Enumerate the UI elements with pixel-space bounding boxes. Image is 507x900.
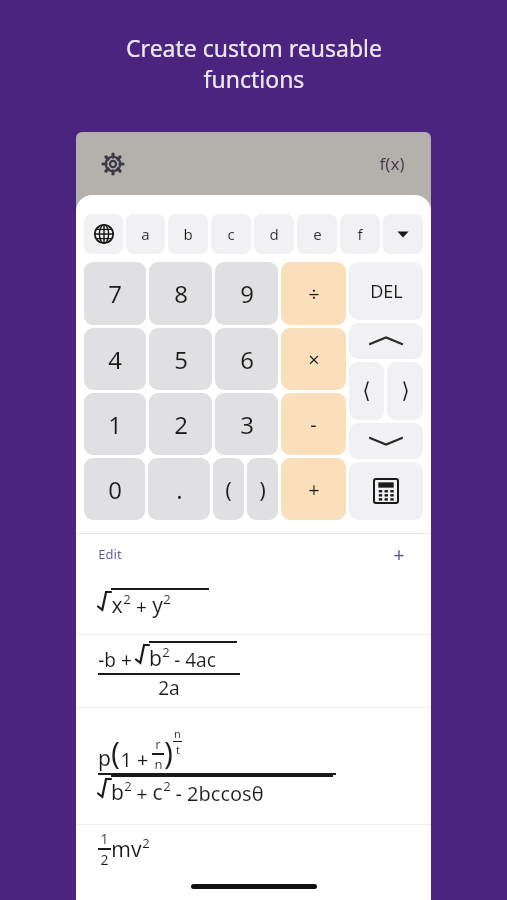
staticText: c xyxy=(227,224,235,244)
button[interactable]: + xyxy=(281,458,346,520)
staticText: DEL xyxy=(370,279,403,304)
staticText: + xyxy=(393,541,405,568)
button[interactable]: More xyxy=(383,214,423,254)
button[interactable]: . xyxy=(148,458,210,520)
button[interactable]: 6 xyxy=(215,328,278,390)
button[interactable]: 5 xyxy=(149,328,212,390)
button[interactable]: Right xyxy=(387,362,423,420)
staticText: ) xyxy=(164,732,173,773)
staticText: n xyxy=(154,755,163,773)
button[interactable]: c xyxy=(211,214,251,254)
staticText: × xyxy=(308,346,320,373)
button[interactable]: Left xyxy=(349,362,384,420)
staticText: b xyxy=(183,224,193,244)
staticText: 8 xyxy=(174,277,188,310)
staticText: - xyxy=(310,411,317,438)
staticText: e xyxy=(313,224,322,244)
staticText: 2a xyxy=(158,675,180,701)
button[interactable]: × xyxy=(281,328,346,390)
staticText: b xyxy=(149,644,162,673)
staticText: d xyxy=(269,224,279,244)
staticText: r xyxy=(155,735,161,753)
staticText: 2 xyxy=(100,850,109,869)
staticText: b xyxy=(111,778,124,807)
button[interactable]: a xyxy=(126,214,165,254)
staticText: t xyxy=(176,742,180,757)
button[interactable]: f(x) xyxy=(373,146,411,181)
staticText: c xyxy=(152,778,163,807)
staticText: f(x) xyxy=(379,152,405,175)
staticText: ( xyxy=(225,474,232,504)
staticText: + xyxy=(136,594,147,620)
button[interactable]: 8 xyxy=(149,262,212,325)
button[interactable]: Edit xyxy=(94,541,126,567)
staticText: ⟨ xyxy=(362,378,371,404)
staticText: + xyxy=(136,780,148,807)
staticText: f xyxy=(357,224,363,244)
staticText: mv xyxy=(111,835,142,864)
button[interactable]: 3 xyxy=(215,393,278,455)
staticText: 1 xyxy=(100,829,109,848)
staticText: 4 xyxy=(108,343,122,376)
staticText: - 4ac xyxy=(174,647,216,673)
button[interactable]: 2 xyxy=(149,393,212,455)
button[interactable]: Up xyxy=(349,323,423,359)
staticText: -b + xyxy=(98,647,132,673)
staticText: n xyxy=(174,726,181,741)
button[interactable]: Down xyxy=(349,423,423,459)
staticText: ( xyxy=(111,732,120,773)
button[interactable]: ( xyxy=(213,458,244,520)
button[interactable]: 0 xyxy=(84,458,145,520)
button[interactable]: ÷ xyxy=(281,262,346,325)
staticText: a xyxy=(141,224,150,244)
button[interactable]: 4 xyxy=(84,328,146,390)
staticText: 3 xyxy=(240,408,254,441)
staticText: 1 xyxy=(108,408,122,441)
button[interactable]: -b + xyxy=(76,635,431,707)
staticText: - 2bccosθ xyxy=(175,780,264,807)
button[interactable]: 9 xyxy=(215,262,278,325)
staticText: 1 + xyxy=(120,746,149,773)
staticText: p xyxy=(98,744,111,773)
button[interactable]: 1 xyxy=(76,825,431,900)
staticText: ) xyxy=(259,474,266,504)
staticText: Create custom reusable functions xyxy=(126,32,382,95)
staticText: 0 xyxy=(108,473,122,506)
button[interactable]: 1 xyxy=(84,393,146,455)
staticText: y xyxy=(152,591,163,620)
button[interactable]: - xyxy=(281,393,346,455)
button[interactable]: Calculator xyxy=(349,462,423,520)
button[interactable]: d xyxy=(254,214,294,254)
button[interactable]: x xyxy=(76,574,431,634)
button[interactable]: Language xyxy=(84,214,123,254)
button[interactable]: Settings xyxy=(96,147,130,181)
button[interactable]: b xyxy=(168,214,208,254)
staticText: 2 xyxy=(163,590,171,608)
staticText: x xyxy=(111,591,123,620)
staticText: . xyxy=(176,473,183,506)
button[interactable]: Add xyxy=(385,540,413,568)
button[interactable]: DEL xyxy=(349,262,423,320)
staticText: 2 xyxy=(174,408,188,441)
staticText: 2 xyxy=(123,590,131,608)
staticText: ÷ xyxy=(308,280,320,307)
button[interactable]: f xyxy=(340,214,380,254)
staticText: 6 xyxy=(240,343,254,376)
button[interactable]: e xyxy=(297,214,337,254)
staticText: + xyxy=(308,476,320,503)
staticText: 2 xyxy=(142,834,150,852)
staticText: 5 xyxy=(174,343,188,376)
staticText: 2 xyxy=(124,777,132,795)
button[interactable]: 7 xyxy=(84,262,146,325)
button[interactable]: ) xyxy=(247,458,278,520)
staticText: 7 xyxy=(108,277,122,310)
staticText: Edit xyxy=(98,545,122,563)
staticText: 2 xyxy=(162,643,170,661)
staticText: 9 xyxy=(240,277,254,310)
staticText: 2 xyxy=(163,777,171,795)
staticText: ⟩ xyxy=(401,378,410,404)
button[interactable]: p xyxy=(76,708,431,824)
